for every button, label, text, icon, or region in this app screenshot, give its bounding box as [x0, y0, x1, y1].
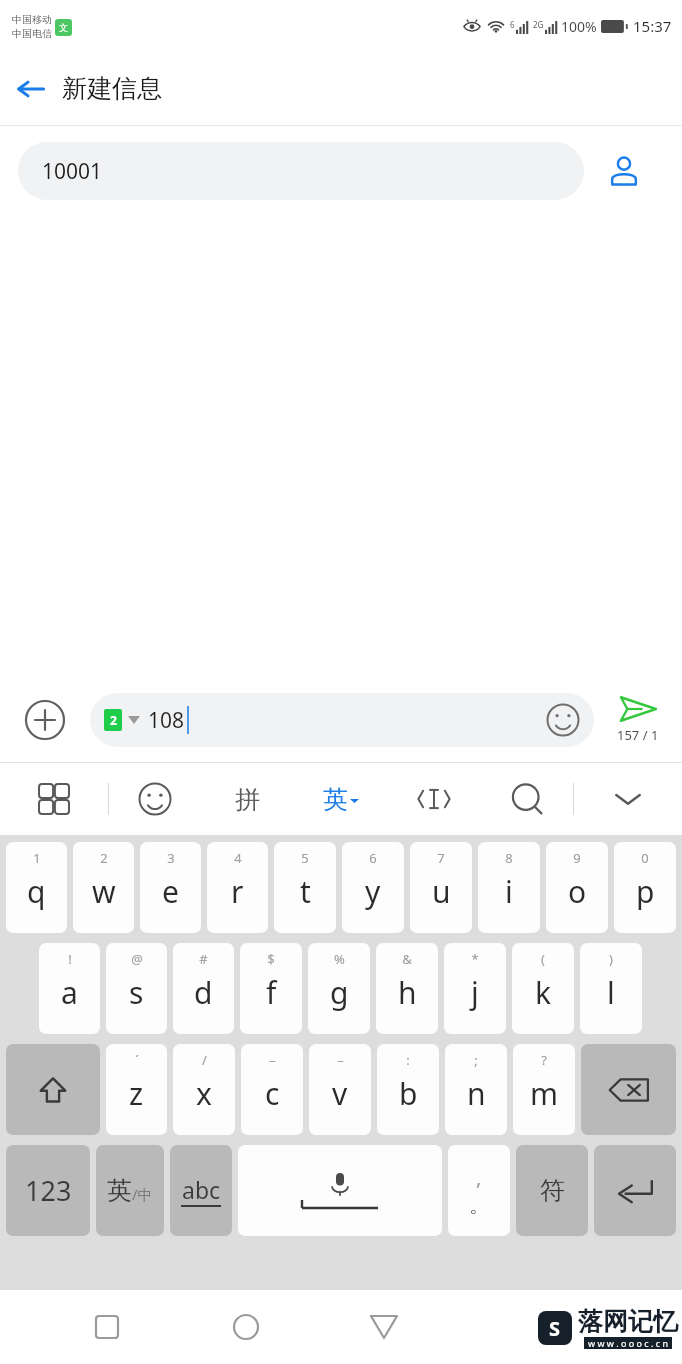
button[interactable]: Recent apps — [75, 1295, 139, 1359]
button[interactable]: 英 — [96, 1145, 164, 1236]
staticText: t — [300, 871, 311, 912]
button[interactable]: 符 — [516, 1145, 588, 1236]
staticText: * — [471, 950, 479, 968]
staticText: j — [471, 972, 479, 1013]
button[interactable]: Home — [214, 1295, 278, 1359]
button[interactable]: ´ — [106, 1044, 167, 1135]
button[interactable]: 5 — [274, 842, 336, 933]
button[interactable]: 0 — [614, 842, 676, 933]
button[interactable]: Back — [0, 58, 62, 120]
staticText: – — [337, 1051, 344, 1069]
staticText: 2 — [110, 712, 117, 728]
staticText: e — [162, 871, 179, 912]
staticText: 8 — [505, 849, 513, 867]
button[interactable]: 英 — [294, 763, 387, 835]
button[interactable]: 123 — [6, 1145, 90, 1236]
staticText: ) — [609, 950, 613, 968]
button[interactable]: 1 — [6, 842, 67, 933]
staticText: 157 / 1 — [617, 726, 659, 744]
button[interactable]: / — [173, 1044, 235, 1135]
staticText: 1 — [33, 849, 41, 867]
button[interactable]: Space — [238, 1145, 442, 1236]
button[interactable]: 2 — [90, 693, 594, 747]
staticText: 0 — [641, 849, 649, 867]
staticText: n — [467, 1073, 486, 1114]
button[interactable]: ) — [580, 943, 642, 1034]
staticText: x — [196, 1073, 212, 1114]
staticText: b — [399, 1073, 418, 1114]
staticText: 中国移动 — [12, 13, 52, 26]
staticText: 英 — [323, 784, 348, 815]
button[interactable]: – — [309, 1044, 371, 1135]
staticText: 10001 — [42, 157, 103, 186]
button[interactable]: Keyboard layouts — [0, 763, 108, 835]
button[interactable]: % — [308, 943, 370, 1034]
button[interactable]: Backspace — [581, 1044, 676, 1135]
staticText: a — [61, 972, 78, 1013]
staticText: ? — [541, 1051, 547, 1069]
staticText: 108 — [148, 706, 185, 735]
button[interactable]: @ — [106, 943, 167, 1034]
button[interactable]: : — [377, 1044, 439, 1135]
staticText: z — [129, 1073, 144, 1114]
staticText: 符 — [540, 1175, 565, 1206]
staticText: c — [265, 1073, 280, 1114]
button[interactable]: ! — [39, 943, 100, 1034]
button[interactable]: 2 — [73, 842, 134, 933]
staticText: $ — [267, 950, 275, 968]
button[interactable]: ; — [445, 1044, 507, 1135]
button[interactable]: 3 — [140, 842, 201, 933]
button[interactable]: Back — [352, 1295, 416, 1359]
button[interactable]: * — [444, 943, 506, 1034]
button[interactable]: – — [241, 1044, 303, 1135]
staticText: 4 — [234, 849, 242, 867]
staticText: 123 — [25, 1172, 72, 1209]
button[interactable]: # — [173, 943, 234, 1034]
staticText: S — [549, 1315, 561, 1342]
button[interactable]: Shift — [6, 1044, 100, 1135]
button[interactable]: $ — [240, 943, 302, 1034]
staticText: 2G — [533, 19, 544, 30]
button[interactable]: 7 — [410, 842, 472, 933]
button[interactable]: 8 — [478, 842, 540, 933]
button[interactable]: 拼 — [201, 763, 294, 835]
staticText: 3 — [167, 849, 175, 867]
staticText: 100% — [561, 17, 597, 36]
staticText: q — [27, 871, 46, 912]
staticText: s — [129, 972, 144, 1013]
staticText: 新建信息 — [62, 73, 162, 104]
button[interactable]: Enter — [594, 1145, 676, 1236]
staticText: g — [330, 972, 349, 1013]
staticText: f — [266, 972, 277, 1013]
button[interactable]: abc — [170, 1145, 232, 1236]
staticText: ! — [68, 950, 72, 968]
staticText: 英 — [107, 1175, 132, 1206]
staticText: 6 — [510, 19, 515, 30]
button[interactable]: 9 — [546, 842, 608, 933]
staticText: w w w . o o o c . c n — [588, 1337, 668, 1349]
button[interactable]: 4 — [207, 842, 268, 933]
staticText: / — [202, 1051, 207, 1069]
button[interactable]: Add attachment — [0, 677, 90, 762]
staticText: /中 — [132, 1184, 153, 1204]
staticText: 拼 — [235, 784, 260, 815]
button[interactable]: & — [376, 943, 438, 1034]
staticText: 9 — [573, 849, 581, 867]
staticText: @ — [131, 950, 143, 968]
staticText: 6 — [369, 849, 377, 867]
button[interactable]: 6 — [342, 842, 404, 933]
button[interactable]: 10001 — [18, 142, 584, 200]
button[interactable]: Search — [480, 763, 573, 835]
button[interactable]: Contacts — [584, 142, 664, 200]
button[interactable]: Hide keyboard — [574, 763, 682, 835]
staticText: ( — [541, 950, 545, 968]
staticText: & — [402, 950, 412, 968]
button[interactable]: ? — [513, 1044, 575, 1135]
button[interactable]: Emoji — [109, 763, 201, 835]
button[interactable]: Send — [594, 677, 682, 762]
staticText: ; — [474, 1051, 478, 1069]
button[interactable]: ( — [512, 943, 574, 1034]
button[interactable]: Cursor control — [387, 763, 480, 835]
staticText: 中国电信 — [12, 27, 52, 40]
button[interactable]: , — [448, 1145, 510, 1236]
